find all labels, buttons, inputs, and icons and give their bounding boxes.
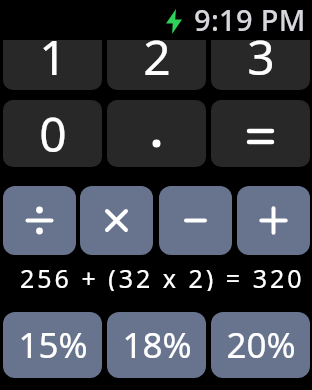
staticText: 1 — [39, 24, 67, 89]
staticText: 0 — [39, 101, 67, 166]
button[interactable] — [211, 100, 310, 167]
button[interactable]: 15% — [3, 312, 102, 378]
button[interactable] — [159, 186, 232, 255]
button[interactable] — [80, 186, 153, 255]
button[interactable]: 0 — [3, 100, 102, 167]
button[interactable]: 1 — [3, 23, 102, 90]
staticText: 3 — [247, 24, 275, 89]
staticText: 20% — [226, 321, 296, 369]
button[interactable]: 2 — [107, 23, 206, 90]
button[interactable] — [107, 100, 206, 167]
staticText: 15% — [18, 321, 88, 369]
staticText: 9:19 PM — [194, 0, 306, 39]
button[interactable] — [3, 186, 76, 255]
button[interactable]: 18% — [107, 312, 206, 378]
button[interactable]: 20% — [211, 312, 310, 378]
staticText: 2 — [143, 24, 171, 89]
button[interactable]: 3 — [211, 23, 310, 90]
button[interactable] — [237, 186, 310, 255]
staticText: 256 + (32 x 2) = 320 — [20, 261, 305, 291]
staticText: 18% — [122, 321, 192, 369]
